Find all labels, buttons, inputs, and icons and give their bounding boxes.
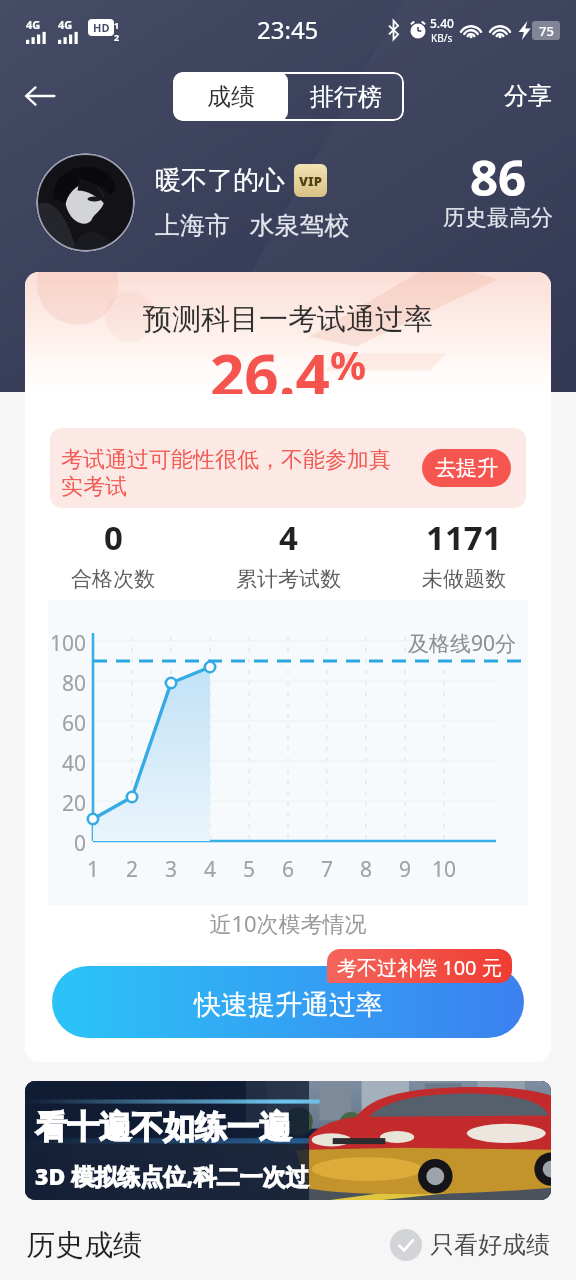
button[interactable]: 考不过补偿 100 元 — [327, 949, 512, 983]
staticText: 暖不了的心 — [155, 164, 285, 197]
staticText: 60 — [48, 709, 86, 738]
staticText: 合格次数 — [71, 566, 155, 592]
button[interactable]: Back — [14, 70, 66, 122]
staticText: 5 — [231, 855, 267, 884]
button[interactable]: 去提升 — [422, 449, 511, 487]
staticText: KB/s — [431, 31, 453, 45]
staticText: 1 — [114, 19, 120, 31]
staticText: 考试通过可能性很低，不能参加真实考试 — [61, 446, 412, 501]
staticText: 考不过补偿 100 元 — [337, 954, 502, 981]
staticText: 80 — [48, 669, 86, 698]
staticText: 100 — [48, 629, 86, 658]
staticText: 近10次模考情况 — [25, 908, 551, 938]
staticText: 20 — [48, 789, 86, 818]
staticText: 快速提升通过率 — [194, 988, 383, 1022]
staticText: 6 — [270, 855, 306, 884]
staticText: 2 — [114, 855, 150, 884]
staticText: 4 — [192, 855, 228, 884]
staticText: 4G — [58, 17, 73, 32]
staticText: 看十遍不如练一遍 — [35, 1107, 291, 1147]
staticText: 0 — [104, 515, 123, 560]
staticText: 累计考试数 — [236, 566, 341, 592]
staticText: 3D 模拟练点位,科二一次过 — [35, 1160, 309, 1191]
staticText: 4G — [26, 17, 41, 32]
staticText: 未做题数 — [422, 566, 506, 592]
staticText: 86 — [470, 144, 527, 211]
button[interactable]: 3D 模拟练点位广告 — [25, 1081, 551, 1200]
staticText: 预测科目一考试通过率 — [25, 301, 551, 338]
staticText: 3 — [153, 855, 189, 884]
staticText: 4 — [279, 515, 298, 560]
staticText: 26.4 — [210, 333, 330, 394]
staticText: 7 — [309, 855, 345, 884]
staticText: 去提升 — [435, 455, 498, 481]
staticText: 1 — [75, 855, 111, 884]
staticText: 0 — [48, 829, 86, 858]
staticText: 分享 — [504, 81, 552, 111]
staticText: 5.40 — [430, 15, 454, 31]
staticText: 历史最高分 — [443, 204, 553, 232]
staticText: 历史成绩 — [26, 1227, 142, 1264]
staticText: VIP — [299, 172, 322, 190]
button[interactable]: 排行榜 — [288, 72, 404, 121]
staticText: 排行榜 — [310, 82, 382, 112]
staticText: 上海市 水泉驾校 — [155, 207, 350, 241]
staticText: 只看好成绩 — [430, 1230, 550, 1260]
staticText: 10 — [426, 855, 462, 884]
staticText: % — [330, 337, 367, 391]
staticText: 23:45 — [257, 13, 319, 46]
button[interactable]: 只看好成绩 — [390, 1229, 550, 1261]
button[interactable]: 成绩 — [173, 72, 288, 121]
staticText: HD — [93, 20, 110, 35]
staticText: 9 — [387, 855, 423, 884]
staticText: 2 — [114, 31, 120, 43]
staticText: 及格线90分 — [408, 629, 517, 658]
staticText: 1171 — [426, 515, 502, 560]
staticText: 75 — [539, 22, 554, 40]
staticText: 8 — [348, 855, 384, 884]
staticText: 成绩 — [207, 82, 255, 112]
button[interactable]: 快速提升通过率 — [52, 966, 524, 1038]
button[interactable]: 分享 — [480, 60, 576, 132]
staticText: 40 — [48, 749, 86, 778]
